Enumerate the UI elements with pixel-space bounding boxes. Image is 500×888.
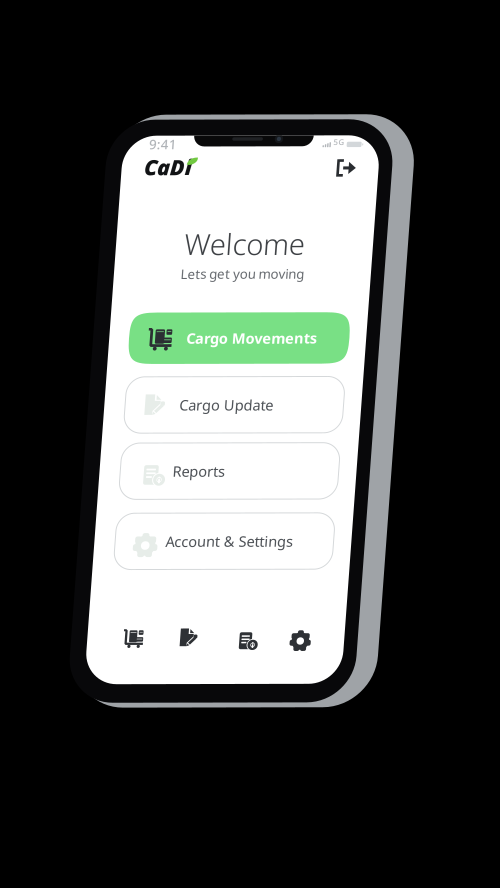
button[interactable]: Cargo Update [80,493,124,523]
button[interactable]: Account and Settings [190,493,234,523]
staticText: Welcome [69,90,191,129]
button[interactable]: Cargo Movements [20,179,243,231]
button[interactable]: Reports [21,311,242,368]
button[interactable]: Cargo Update [21,244,242,301]
staticText: Reports [74,330,127,349]
button[interactable]: Reports [135,493,179,523]
staticText: Cargo Update [76,263,171,282]
staticText: Lets get you moving [67,131,192,149]
button[interactable]: Account & Settings [21,382,242,439]
staticText: Cargo Movements [78,195,210,215]
staticText: Account & Settings [72,401,201,420]
